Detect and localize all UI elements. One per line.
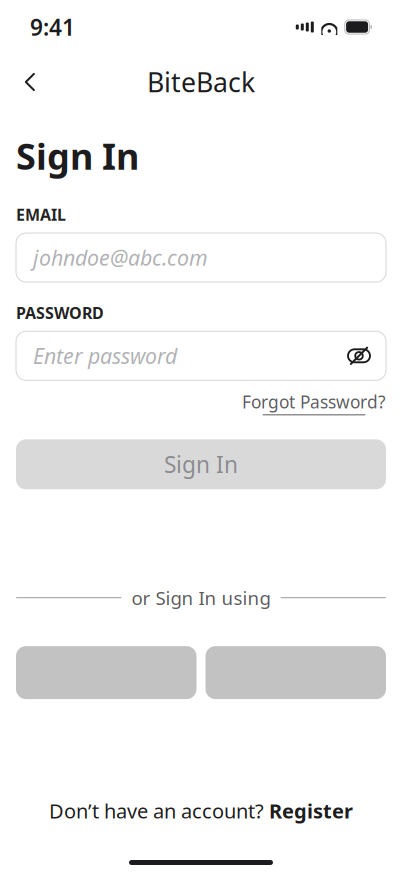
staticText: BiteBack [147, 64, 255, 100]
staticText: or Sign In using [131, 585, 270, 610]
staticText: EMAIL [16, 204, 66, 225]
staticText: Sign In [16, 132, 139, 180]
staticText: Don’t have an account? [49, 797, 264, 824]
staticText: PASSWORD [16, 302, 104, 323]
staticText: johndoe@abc.com [33, 243, 208, 272]
staticText: 9:41 [30, 12, 75, 42]
button[interactable]: Back [8, 60, 52, 104]
button[interactable]: Show password [342, 339, 376, 373]
button[interactable]: Sign in with provider one [16, 646, 196, 699]
button[interactable]: Don’t have an account? [49, 797, 353, 824]
button[interactable]: Forgot Password? [242, 390, 386, 415]
staticText: Forgot Password? [242, 390, 386, 413]
staticText: Register [269, 797, 353, 824]
button[interactable]: Sign In [16, 439, 386, 489]
staticText: Sign In [164, 449, 238, 479]
button[interactable]: Sign in with provider two [205, 646, 386, 699]
staticText: Enter password [33, 342, 177, 370]
